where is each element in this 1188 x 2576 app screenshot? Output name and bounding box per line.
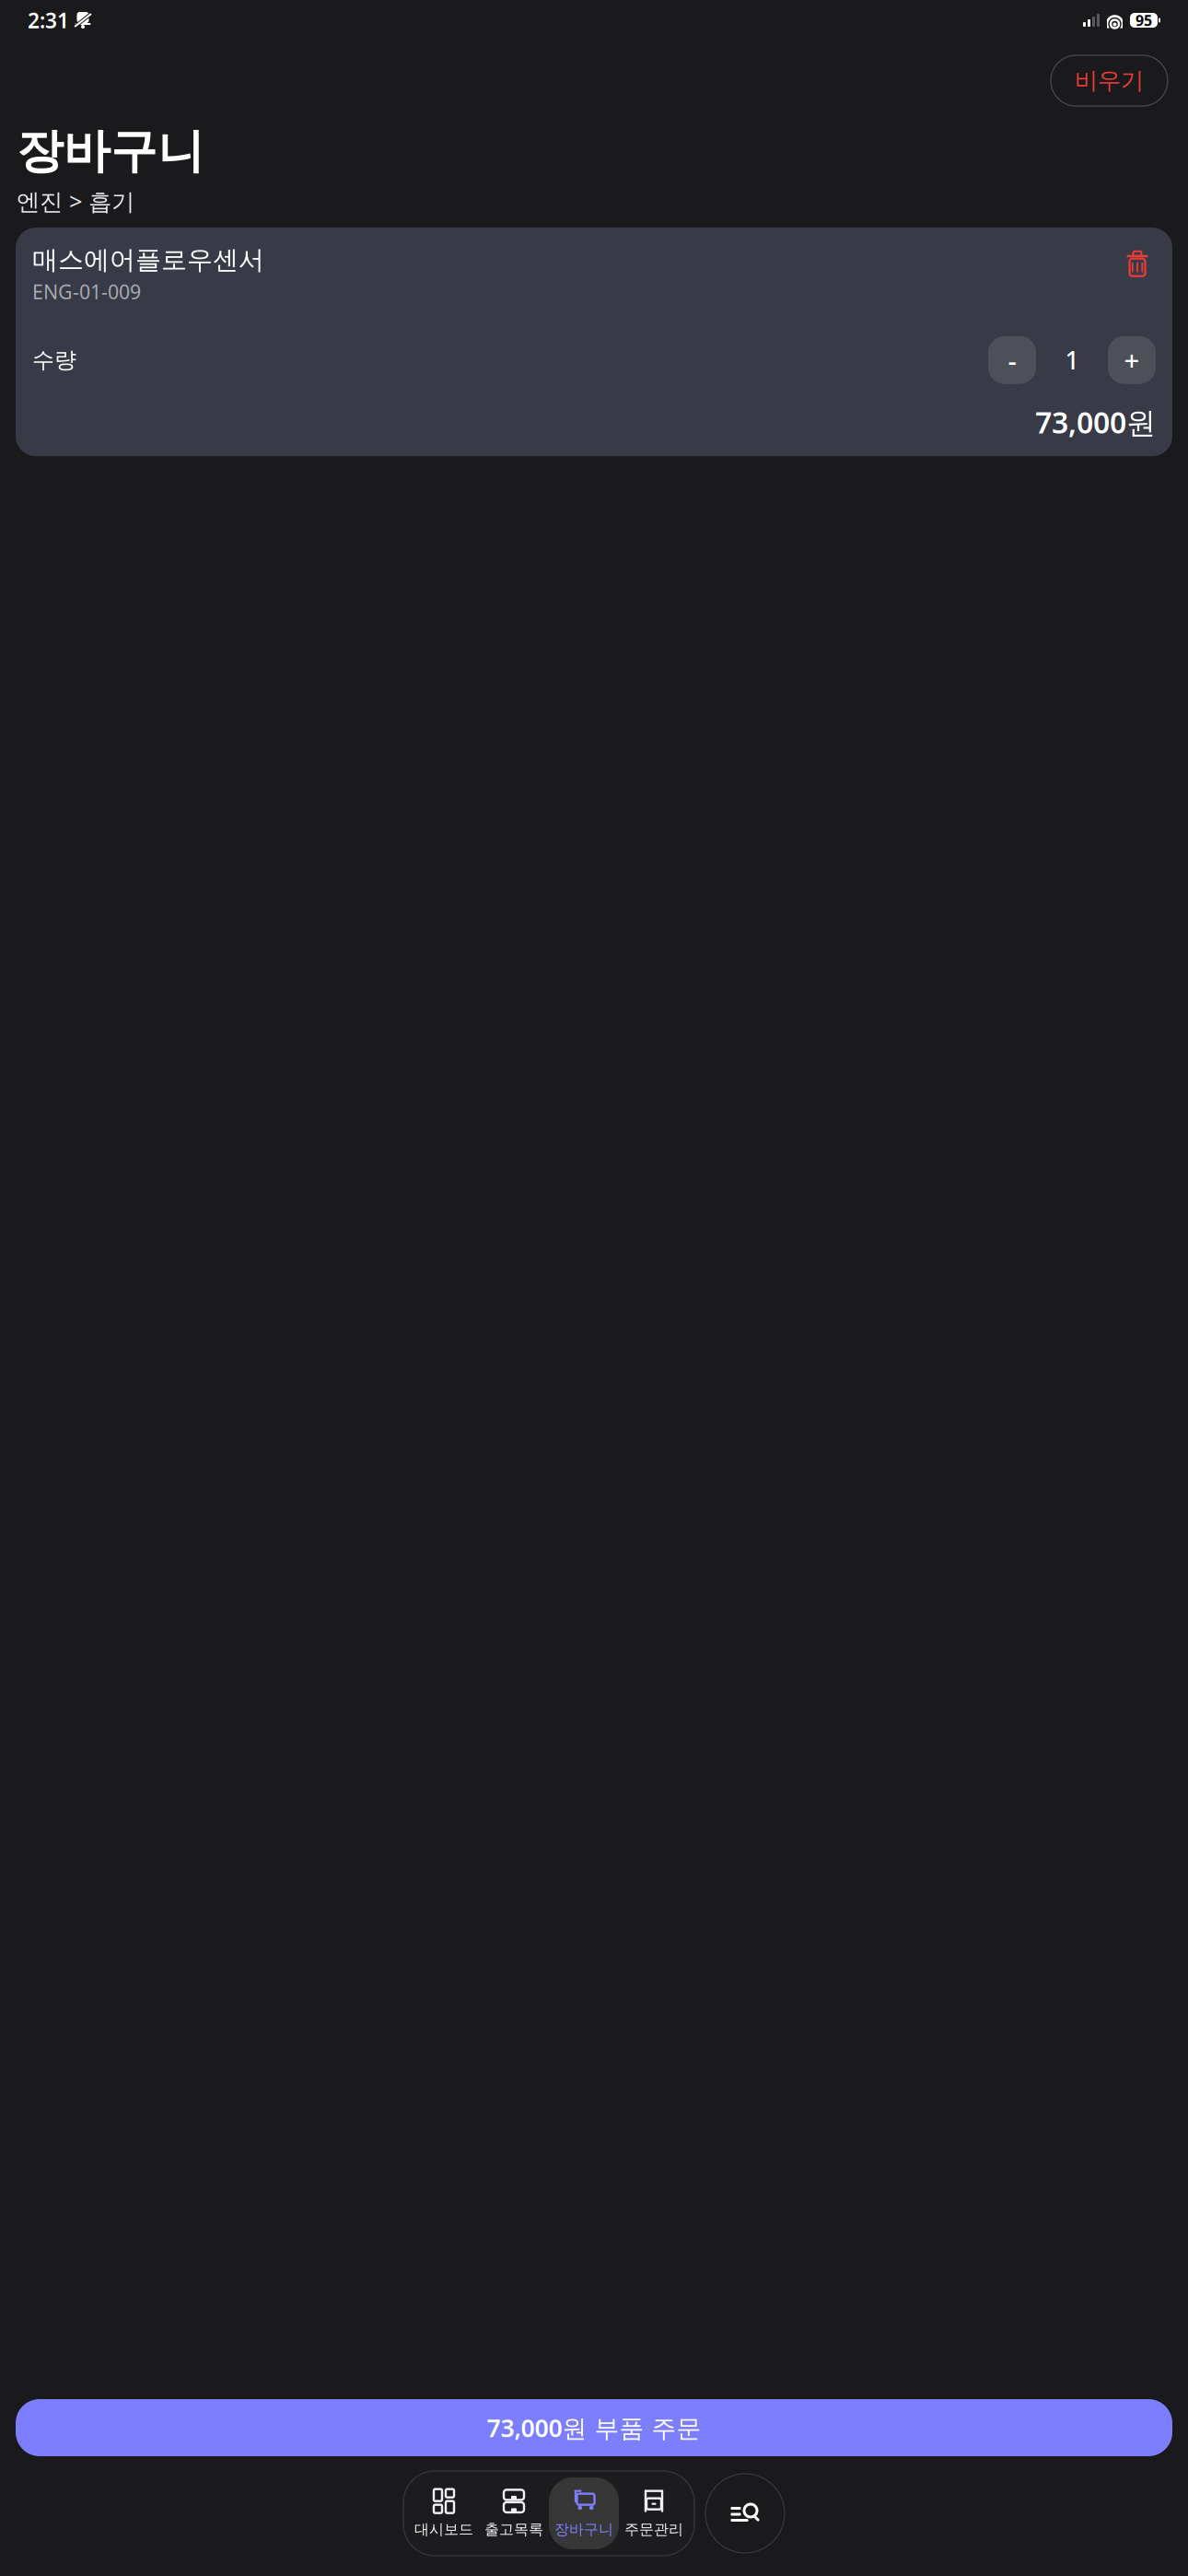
staticText: 73,000원: [1035, 402, 1156, 441]
staticText: 엔진 > 흡기: [17, 185, 134, 216]
button[interactable]: 부품 검색: [705, 2474, 785, 2553]
button[interactable]: 73,000원 부품 주문: [16, 2399, 1172, 2456]
button[interactable]: 비우기: [1051, 55, 1168, 106]
staticText: 2:31: [28, 6, 69, 34]
button[interactable]: 출고목록: [479, 2477, 549, 2549]
staticText: 1: [1065, 344, 1079, 376]
button[interactable]: 대시보드: [409, 2477, 479, 2549]
staticText: 73,000원 부품 주문: [487, 2411, 701, 2444]
staticText: -: [1008, 342, 1016, 378]
staticText: ENG-01-009: [32, 279, 141, 305]
staticText: 대시보드: [414, 2520, 473, 2539]
staticText: 장바구니: [17, 123, 204, 180]
staticText: 주문관리: [624, 2520, 683, 2539]
staticText: +: [1124, 342, 1140, 378]
staticText: 95: [1136, 11, 1152, 30]
button[interactable]: 수량 감소: [988, 336, 1036, 384]
staticText: 출고목록: [484, 2520, 543, 2539]
staticText: 매스에어플로우센서: [32, 244, 264, 276]
staticText: 비우기: [1075, 66, 1144, 95]
button[interactable]: 장바구니: [549, 2477, 619, 2549]
button[interactable]: 수량 증가: [1108, 336, 1156, 384]
staticText: 장바구니: [554, 2520, 613, 2539]
button[interactable]: 주문관리: [619, 2477, 689, 2549]
staticText: 수량: [32, 346, 76, 374]
button[interactable]: 삭제: [1119, 244, 1156, 281]
